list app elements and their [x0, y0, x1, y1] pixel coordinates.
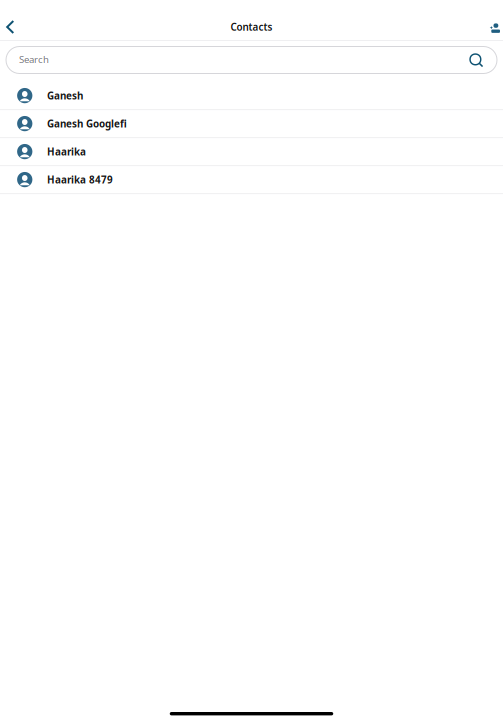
button[interactable]: Ganesh — [0, 82, 503, 110]
button[interactable]: Back — [0, 14, 26, 40]
button[interactable]: Search — [6, 46, 497, 73]
button[interactable]: Ganesh Googlefi — [0, 110, 503, 138]
staticText: Haarika — [47, 145, 86, 158]
button[interactable]: Haarika 8479 — [0, 166, 503, 194]
button[interactable]: Haarika — [0, 138, 503, 166]
staticText: Ganesh — [47, 89, 83, 102]
staticText: Contacts — [230, 20, 272, 34]
staticText: Haarika 8479 — [47, 173, 113, 186]
staticText: Ganesh Googlefi — [47, 117, 127, 130]
staticText: Search — [19, 53, 49, 66]
button[interactable]: Add contact — [477, 16, 503, 38]
